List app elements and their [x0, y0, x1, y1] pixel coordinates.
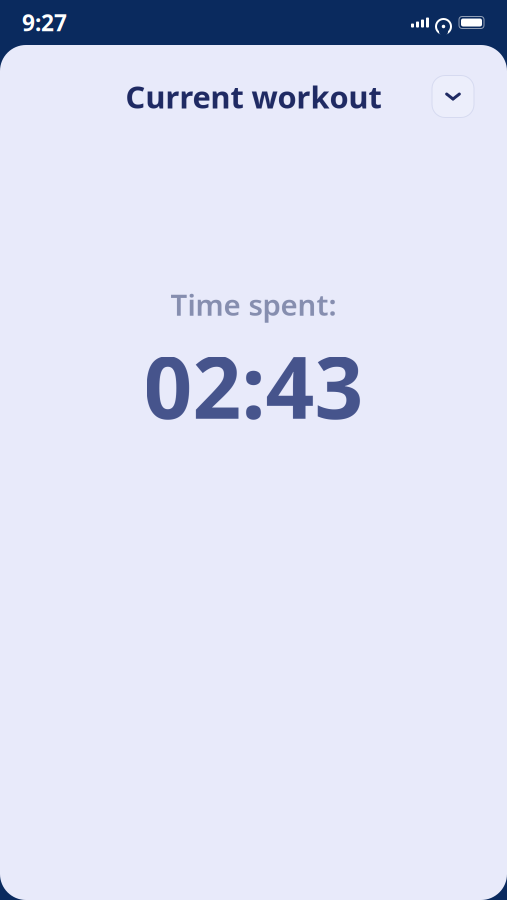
button[interactable]: Collapse: [432, 75, 474, 117]
staticText: 02:43: [143, 329, 363, 442]
staticText: Current workout: [125, 76, 381, 117]
staticText: 9:27: [22, 7, 67, 37]
staticText: Time spent:: [170, 285, 336, 324]
